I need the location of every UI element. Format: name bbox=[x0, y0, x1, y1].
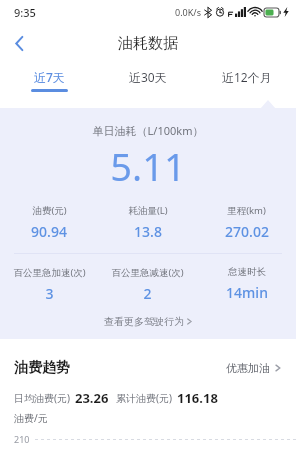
staticText: 日均油费(元) bbox=[14, 391, 70, 405]
button[interactable]: Back bbox=[0, 24, 38, 62]
staticText: 耗油量(L) bbox=[128, 204, 168, 217]
staticText: 270.02 bbox=[225, 222, 269, 241]
staticText: 怠速时长 bbox=[228, 266, 266, 278]
button[interactable]: 查看更多驾驶行为 bbox=[0, 315, 296, 328]
staticText: 23.26 bbox=[75, 389, 109, 407]
staticText: 3 bbox=[45, 284, 54, 303]
staticText: 14min bbox=[226, 283, 268, 302]
staticText: 油耗数据 bbox=[118, 34, 178, 53]
staticText: 百公里急加速(次) bbox=[13, 266, 86, 279]
staticText: 5.11 bbox=[0, 140, 296, 192]
staticText: 近12个月 bbox=[222, 69, 272, 85]
staticText: 百公里急减速(次) bbox=[111, 266, 184, 279]
staticText: 2 bbox=[143, 284, 152, 303]
staticText: 13.8 bbox=[134, 222, 162, 241]
staticText: 9:35 bbox=[14, 5, 36, 20]
staticText: 0.0K/s bbox=[175, 6, 201, 18]
staticText: 单日油耗（L/100km） bbox=[0, 123, 296, 138]
staticText: 油费(元) bbox=[32, 204, 67, 217]
button[interactable]: 近30天 bbox=[98, 62, 197, 96]
staticText: 90.94 bbox=[31, 222, 67, 241]
staticText: 近7天 bbox=[34, 69, 65, 85]
staticText: 油费/元 bbox=[14, 411, 48, 425]
staticText: 优惠加油 bbox=[226, 361, 270, 375]
button[interactable]: 近7天 bbox=[0, 62, 98, 96]
staticText: 累计油费(元) bbox=[116, 391, 172, 405]
staticText: 油费趋势 bbox=[14, 359, 70, 377]
staticText: 210 bbox=[14, 433, 30, 445]
staticText: 近30天 bbox=[129, 69, 167, 85]
staticText: 查看更多驾驶行为 bbox=[104, 315, 184, 328]
button[interactable]: 近12个月 bbox=[197, 62, 296, 96]
button[interactable]: 优惠加油 bbox=[226, 361, 282, 375]
staticText: 里程(km) bbox=[227, 204, 266, 217]
staticText: 116.18 bbox=[177, 389, 218, 407]
